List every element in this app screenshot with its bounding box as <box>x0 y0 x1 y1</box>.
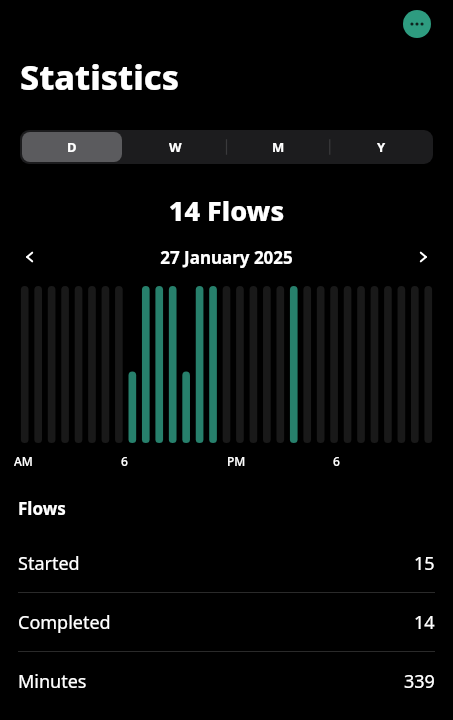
staticText: W <box>169 138 182 156</box>
staticText: 15 <box>414 551 435 576</box>
button[interactable]: More options <box>403 10 431 38</box>
button[interactable]: M <box>229 132 328 162</box>
button[interactable]: D <box>22 132 122 162</box>
button[interactable]: Previous day <box>16 243 44 271</box>
button[interactable]: Started <box>0 534 453 592</box>
staticText: D <box>67 138 77 156</box>
button[interactable]: Y <box>332 132 431 162</box>
button[interactable]: Minutes <box>0 652 453 710</box>
staticText: Y <box>377 138 386 156</box>
staticText: Completed <box>18 610 414 635</box>
staticText: AM <box>14 453 33 469</box>
staticText: 27 January 2025 <box>44 246 409 269</box>
staticText: 14 Flows <box>0 192 453 229</box>
staticText: Flows <box>18 497 66 520</box>
staticText: Minutes <box>18 669 404 694</box>
staticText: PM <box>227 453 246 469</box>
button[interactable]: Completed <box>0 593 453 651</box>
staticText: M <box>272 138 285 156</box>
staticText: 14 <box>414 610 435 635</box>
button[interactable]: W <box>126 132 225 162</box>
button[interactable]: Next day <box>409 243 437 271</box>
staticText: Statistics <box>20 54 180 100</box>
staticText: 6 <box>121 453 128 469</box>
staticText: Started <box>18 551 414 576</box>
staticText: 339 <box>404 669 435 694</box>
staticText: 6 <box>333 453 340 469</box>
